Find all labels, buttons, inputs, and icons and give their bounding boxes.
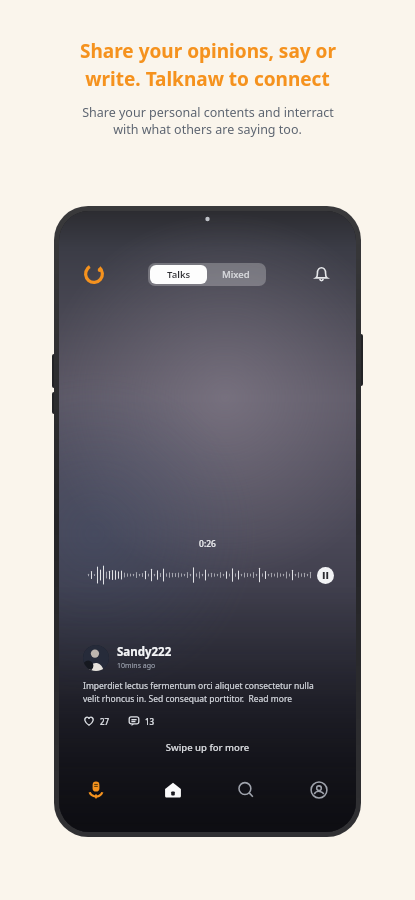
staticText: 13	[145, 716, 155, 727]
button[interactable]: 13	[128, 715, 155, 727]
button[interactable]: Home	[146, 770, 200, 810]
button[interactable]: Pause	[317, 567, 334, 584]
button[interactable]: Search	[219, 770, 273, 810]
staticText: with what others are saying too.	[113, 121, 302, 138]
staticText: Talks	[167, 268, 191, 281]
button[interactable]: Notifications	[308, 261, 334, 287]
staticText: Swipe up for more	[59, 741, 356, 754]
button[interactable]: Record	[65, 770, 127, 810]
staticText: 0:26	[59, 538, 356, 550]
button[interactable]: 27	[83, 715, 110, 727]
button[interactable]: Profile	[292, 770, 346, 810]
button[interactable]: Sandy222 avatar	[83, 645, 109, 671]
staticText: Mixed	[222, 268, 250, 281]
staticText: Imperdiet lectus fermentum orci aliquet …	[83, 680, 332, 705]
staticText: Share your opinions, say or	[80, 38, 336, 64]
staticText: 27	[100, 716, 110, 727]
button[interactable]: Talknaw home	[81, 261, 107, 287]
button[interactable]: Talks	[150, 265, 207, 284]
staticText: write. Talknaw to connect	[85, 66, 330, 92]
staticText: Share your personal contents and interra…	[82, 104, 334, 121]
staticText: 10mins ago	[117, 661, 156, 671]
staticText: Sandy222	[117, 644, 172, 660]
button[interactable]: Mixed	[207, 265, 264, 284]
